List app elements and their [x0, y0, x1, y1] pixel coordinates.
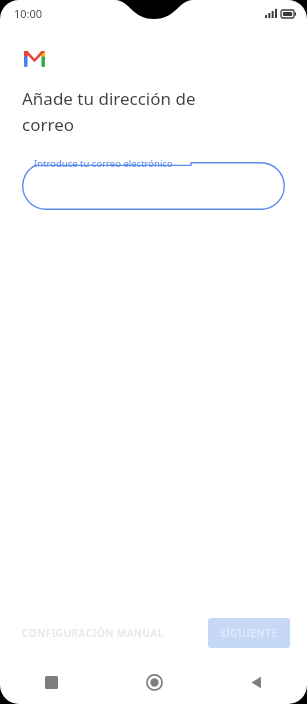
button[interactable]: CONFIGURACIÓN MANUAL — [18, 618, 168, 648]
button[interactable] — [22, 162, 285, 210]
button[interactable]: SIGUIENTE — [208, 618, 290, 648]
button[interactable]: Recents — [0, 660, 103, 704]
staticText: 10:00 — [14, 6, 43, 21]
button[interactable]: Back — [205, 660, 307, 704]
staticText: Introduce tu correo electrónico — [34, 157, 173, 170]
staticText: CONFIGURACIÓN MANUAL — [22, 626, 164, 640]
button[interactable]: Home — [103, 660, 205, 704]
staticText: Añade tu dirección de correo — [22, 87, 196, 136]
staticText: SIGUIENTE — [220, 626, 278, 640]
